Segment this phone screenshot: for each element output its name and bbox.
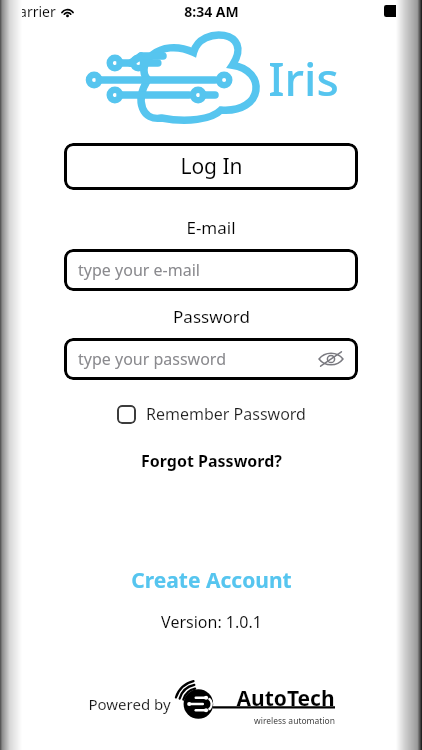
staticText: 8:34 AM <box>184 2 239 21</box>
staticText: E-mail <box>186 216 236 239</box>
staticText: type your password <box>78 348 226 370</box>
staticText: Log In <box>180 152 243 181</box>
other: Show password <box>318 350 344 368</box>
button[interactable]: Forgot Password? <box>137 446 286 476</box>
staticText: Carrier <box>10 2 56 21</box>
staticText: AutoTech <box>236 684 335 713</box>
staticText: Iris <box>268 47 339 110</box>
staticText: Create Account <box>131 566 292 595</box>
button[interactable]: Remember Password <box>111 400 312 428</box>
button[interactable]: type your e-mail <box>64 249 358 291</box>
button[interactable]: type your password <box>64 338 358 380</box>
staticText: type your e-mail <box>78 259 200 281</box>
staticText: Version: 1.0.1 <box>161 611 262 633</box>
button[interactable]: Create Account <box>127 562 296 599</box>
staticText: Powered by <box>88 694 171 714</box>
button[interactable]: Log In <box>64 143 358 190</box>
staticText: Password <box>173 305 250 328</box>
staticText: wireless automation <box>254 715 335 724</box>
staticText: Remember Password <box>146 403 306 425</box>
staticText: Forgot Password? <box>141 450 282 472</box>
